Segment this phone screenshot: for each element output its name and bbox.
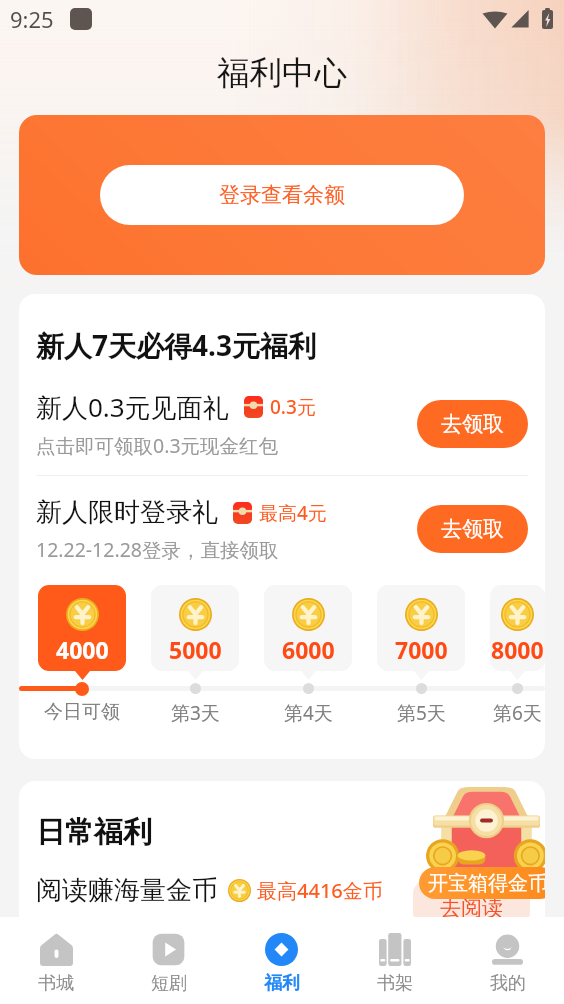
staticText: 福利 (264, 972, 300, 995)
staticText: 点击即可领取0.3元现金红包 (36, 432, 279, 459)
staticText: 登录查看余额 (219, 182, 345, 208)
staticText: 去领取 (441, 411, 504, 437)
staticText: 短剧 (151, 972, 187, 995)
button[interactable]: 登录查看余额 (19, 115, 545, 275)
button[interactable]: 短剧 (112, 917, 225, 1004)
button[interactable]: 去阅读 (413, 880, 530, 926)
staticText: 6000 (282, 634, 335, 665)
staticText: 9:25 (10, 4, 54, 34)
button[interactable]: 5000 (151, 585, 239, 671)
staticText: 新人7天必得4.3元福利 (36, 326, 316, 364)
button[interactable]: 登录查看余额 (100, 165, 464, 225)
staticText: 7000 (395, 634, 448, 665)
staticText: 第3天 (171, 700, 220, 726)
button[interactable]: 6000 (264, 585, 352, 671)
staticText: 最高4元 (259, 500, 327, 526)
staticText: 12.22-12.28登录，直接领取 (36, 536, 279, 563)
staticText: 阅读赚海量金币 (36, 874, 218, 907)
button[interactable]: 新人限时登录礼 (19, 476, 545, 582)
staticText: 第5天 (397, 700, 446, 726)
staticText: 第6天 (493, 700, 542, 726)
staticText: 新人限时登录礼 (36, 496, 218, 529)
staticText: 第4天 (284, 700, 333, 726)
staticText: 书城 (38, 972, 74, 995)
button[interactable]: 书架 (338, 917, 451, 1004)
staticText: 开宝箱得金币 (428, 871, 545, 896)
staticText: 去领取 (441, 516, 504, 542)
staticText: 8000 (491, 634, 544, 665)
staticText: 5000 (169, 634, 222, 665)
staticText: 去阅读 (440, 895, 503, 921)
button[interactable]: 7000 (377, 585, 465, 671)
staticText: 新人0.3元见面礼 (36, 389, 229, 425)
staticText: 最高4416金币 (257, 877, 383, 904)
button[interactable]: 去领取 (417, 400, 528, 448)
staticText: 我的 (490, 972, 526, 995)
button[interactable]: 4000 (38, 585, 126, 671)
button[interactable]: 书城 (0, 917, 112, 1004)
staticText: 书架 (377, 972, 413, 995)
button[interactable]: 福利 (225, 917, 338, 1004)
staticText: 福利中心 (217, 53, 347, 94)
staticText: 日常福利 (36, 814, 152, 851)
button[interactable]: 去领取 (417, 505, 528, 553)
button[interactable]: 新人0.3元见面礼 (19, 381, 545, 475)
button[interactable]: 开宝箱得金币 (419, 867, 545, 899)
staticText: 今日可领 (44, 700, 120, 724)
button[interactable]: 我的 (451, 917, 564, 1004)
staticText: 4000 (56, 634, 109, 665)
staticText: 0.3元 (270, 394, 316, 420)
button[interactable]: 8000 (490, 585, 545, 671)
